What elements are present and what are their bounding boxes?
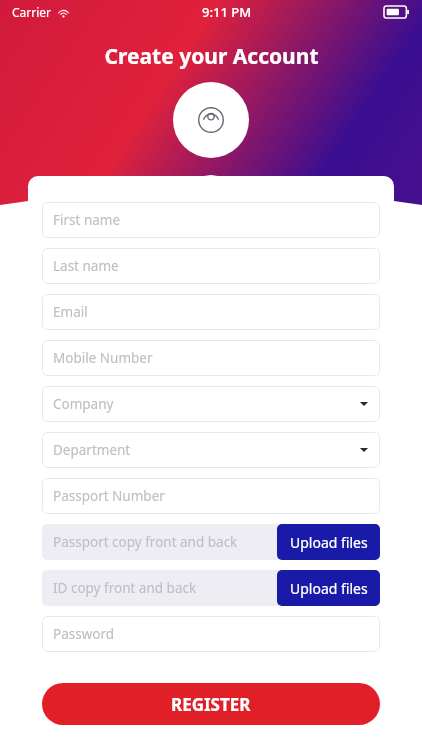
button[interactable]: Passport copy front and back xyxy=(42,524,380,560)
staticText: Upload files xyxy=(290,533,368,552)
button[interactable]: First name xyxy=(42,202,380,238)
button[interactable]: Department xyxy=(42,432,380,468)
button[interactable]: Passport Number xyxy=(42,478,380,514)
staticText: Upload files xyxy=(290,579,368,598)
button[interactable]: Add profile photo xyxy=(173,82,249,158)
button[interactable]: ID copy front and back xyxy=(42,570,380,606)
button[interactable]: Email xyxy=(42,294,380,330)
staticText: Mobile Number xyxy=(53,349,153,367)
staticText: REGISTER xyxy=(171,693,251,716)
staticText: Last name xyxy=(53,257,119,275)
button[interactable]: Last name xyxy=(42,248,380,284)
staticText: Password xyxy=(53,625,115,643)
button[interactable]: Password xyxy=(42,616,380,652)
button[interactable]: Upload files xyxy=(277,570,380,606)
button[interactable]: Upload files xyxy=(277,524,380,560)
staticText: Email xyxy=(53,303,88,321)
staticText: First name xyxy=(53,211,121,229)
staticText: Passport copy front and back xyxy=(53,533,238,551)
button[interactable]: Company xyxy=(42,386,380,422)
button[interactable]: Mobile Number xyxy=(42,340,380,376)
staticText: 9:11 PM xyxy=(202,3,252,21)
staticText: Department xyxy=(53,441,131,459)
staticText: Company xyxy=(53,395,114,413)
staticText: Create your Account xyxy=(104,42,319,71)
button[interactable]: REGISTER xyxy=(42,683,380,725)
staticText: Carrier xyxy=(12,4,52,20)
staticText: ID copy front and back xyxy=(53,579,197,597)
staticText: Passport Number xyxy=(53,487,165,505)
